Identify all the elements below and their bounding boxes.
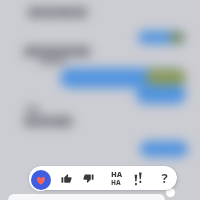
button[interactable] — [8, 194, 165, 200]
button[interactable]: Love reaction — [29, 168, 52, 191]
staticText: HA — [111, 169, 123, 179]
button[interactable]: Thumbs down — [77, 166, 99, 190]
staticText: ? — [161, 169, 168, 187]
button[interactable]: Thumbs up — [55, 166, 77, 190]
staticText: HA — [111, 178, 121, 187]
button[interactable]: Haha reaction — [106, 166, 128, 190]
button[interactable]: ? — [153, 166, 175, 190]
button[interactable]: Exclamation reaction — [128, 166, 150, 190]
